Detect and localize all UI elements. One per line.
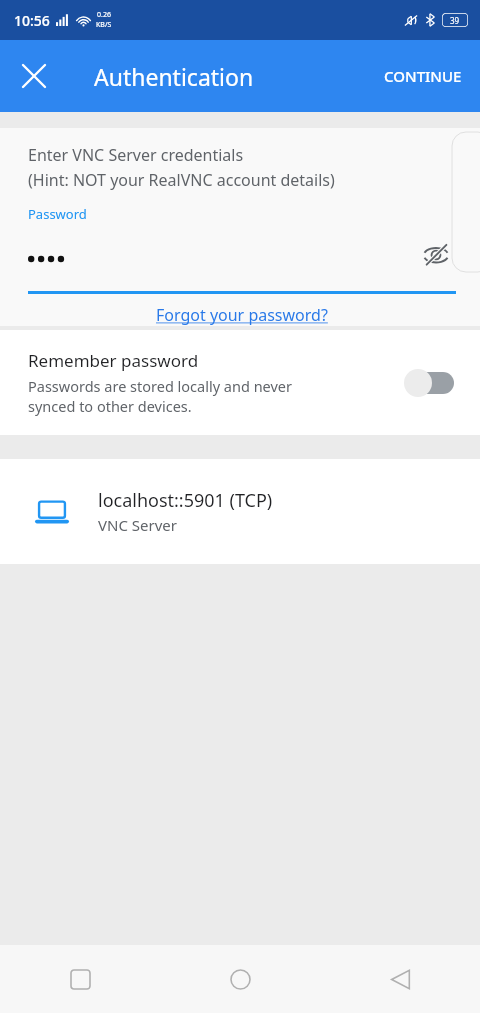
staticText: 39 — [450, 15, 460, 26]
button[interactable] — [404, 367, 456, 399]
button[interactable]: Home — [160, 945, 320, 1013]
button[interactable]: Forgot your password? — [156, 304, 328, 326]
staticText: Password — [28, 205, 87, 223]
button[interactable]: localhost::5901 (TCP) — [0, 459, 480, 564]
staticText: 0.26 — [97, 10, 111, 20]
button[interactable]: Back — [320, 945, 480, 1013]
staticText: Enter VNC Server credentials — [28, 144, 244, 166]
staticText: 10:56 — [14, 11, 50, 30]
staticText: (Hint: NOT your RealVNC account details) — [28, 169, 335, 191]
staticText: CONTINUE — [384, 66, 462, 86]
staticText: Forgot your password? — [156, 304, 328, 326]
staticText: Remember password — [28, 349, 199, 372]
staticText: localhost::5901 (TCP) — [98, 488, 273, 513]
staticText: VNC Server — [98, 515, 177, 535]
button[interactable]: Close — [10, 52, 58, 100]
button[interactable]: Show password — [416, 235, 456, 275]
staticText: Passwords are stored locally and never — [28, 376, 293, 396]
button[interactable]: Recent apps — [0, 945, 160, 1013]
button[interactable]: CONTINUE — [366, 52, 480, 100]
staticText: KB/S — [96, 20, 112, 30]
staticText: Authentication — [94, 61, 254, 92]
staticText: synced to other devices. — [28, 396, 192, 416]
button[interactable]: Remember password — [0, 330, 480, 435]
